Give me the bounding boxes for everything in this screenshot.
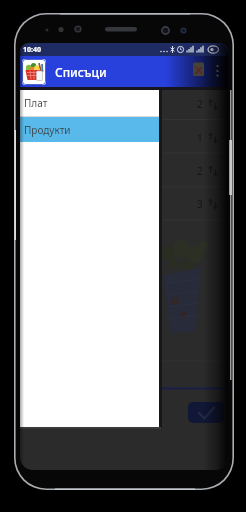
staticText: Списъци [55, 64, 107, 80]
staticText: Плат [24, 96, 48, 110]
button[interactable]: Списъци [20, 56, 228, 87]
staticText: Продукти [24, 123, 71, 137]
staticText: 3 [197, 197, 203, 211]
button[interactable] [188, 402, 224, 423]
button[interactable]: Плат [20, 90, 159, 116]
staticText: 2 [197, 97, 203, 111]
button[interactable]: Продукти [20, 117, 159, 142]
staticText: 2 [197, 164, 203, 178]
staticText: 10:40 [23, 45, 41, 55]
staticText: 1 [197, 131, 203, 145]
